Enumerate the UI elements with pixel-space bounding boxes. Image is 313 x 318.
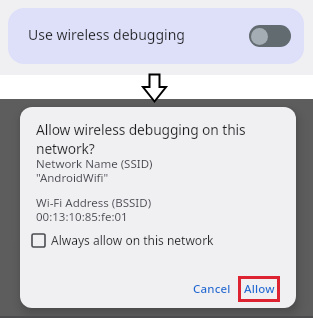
button[interactable]: Use wireless debugging — [8, 8, 304, 64]
staticText: Allow wireless debugging on this network… — [36, 120, 246, 158]
button[interactable]: Cancel — [186, 276, 238, 302]
button[interactable] — [249, 25, 291, 47]
staticText: Use wireless debugging — [28, 25, 185, 44]
staticText: Allow — [244, 281, 275, 297]
button[interactable]: Allow — [238, 276, 280, 302]
button[interactable]: Always allow on this network — [30, 229, 230, 251]
staticText: Network Name (SSID) "AndroidWifi" — [36, 156, 153, 185]
staticText: Wi-Fi Address (BSSID) 00:13:10:85:fe:01 — [36, 195, 152, 224]
staticText: Cancel — [193, 281, 231, 297]
staticText: Always allow on this network — [51, 232, 214, 248]
